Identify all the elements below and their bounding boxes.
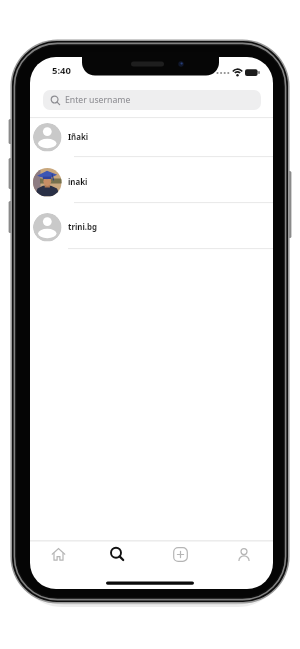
staticText: Enter username [65, 94, 131, 106]
button[interactable]: Enter username [43, 90, 261, 110]
button[interactable] [151, 541, 212, 568]
staticText: Iñaki [68, 132, 89, 143]
button[interactable]: Iñaki [30, 118, 273, 157]
staticText: 5:40 [52, 64, 71, 77]
button[interactable] [212, 541, 273, 568]
button[interactable]: inaki [30, 157, 273, 203]
staticText: trini.bg [68, 222, 97, 233]
button[interactable]: trini.bg [30, 203, 273, 249]
button[interactable] [30, 541, 90, 568]
button[interactable] [90, 541, 151, 568]
staticText: inaki [68, 177, 88, 188]
